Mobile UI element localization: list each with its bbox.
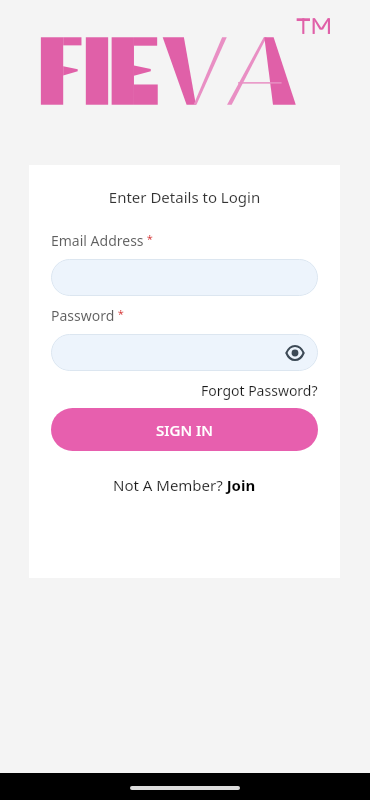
button[interactable]: Forgot Password? [199,380,320,401]
staticText: Email Address [51,231,144,250]
staticText: SIGN IN [156,420,213,440]
staticText: * [115,306,124,321]
staticText: Enter Details to Login [29,187,340,207]
button[interactable]: Password input [51,334,318,371]
staticText: * [144,231,153,246]
button[interactable]: Email Address input [51,259,318,296]
button[interactable]: SIGN IN [51,408,318,451]
button[interactable]: Show password [282,340,308,366]
button[interactable]: Not A Member? Join [109,473,260,497]
staticText: Password [51,306,115,325]
